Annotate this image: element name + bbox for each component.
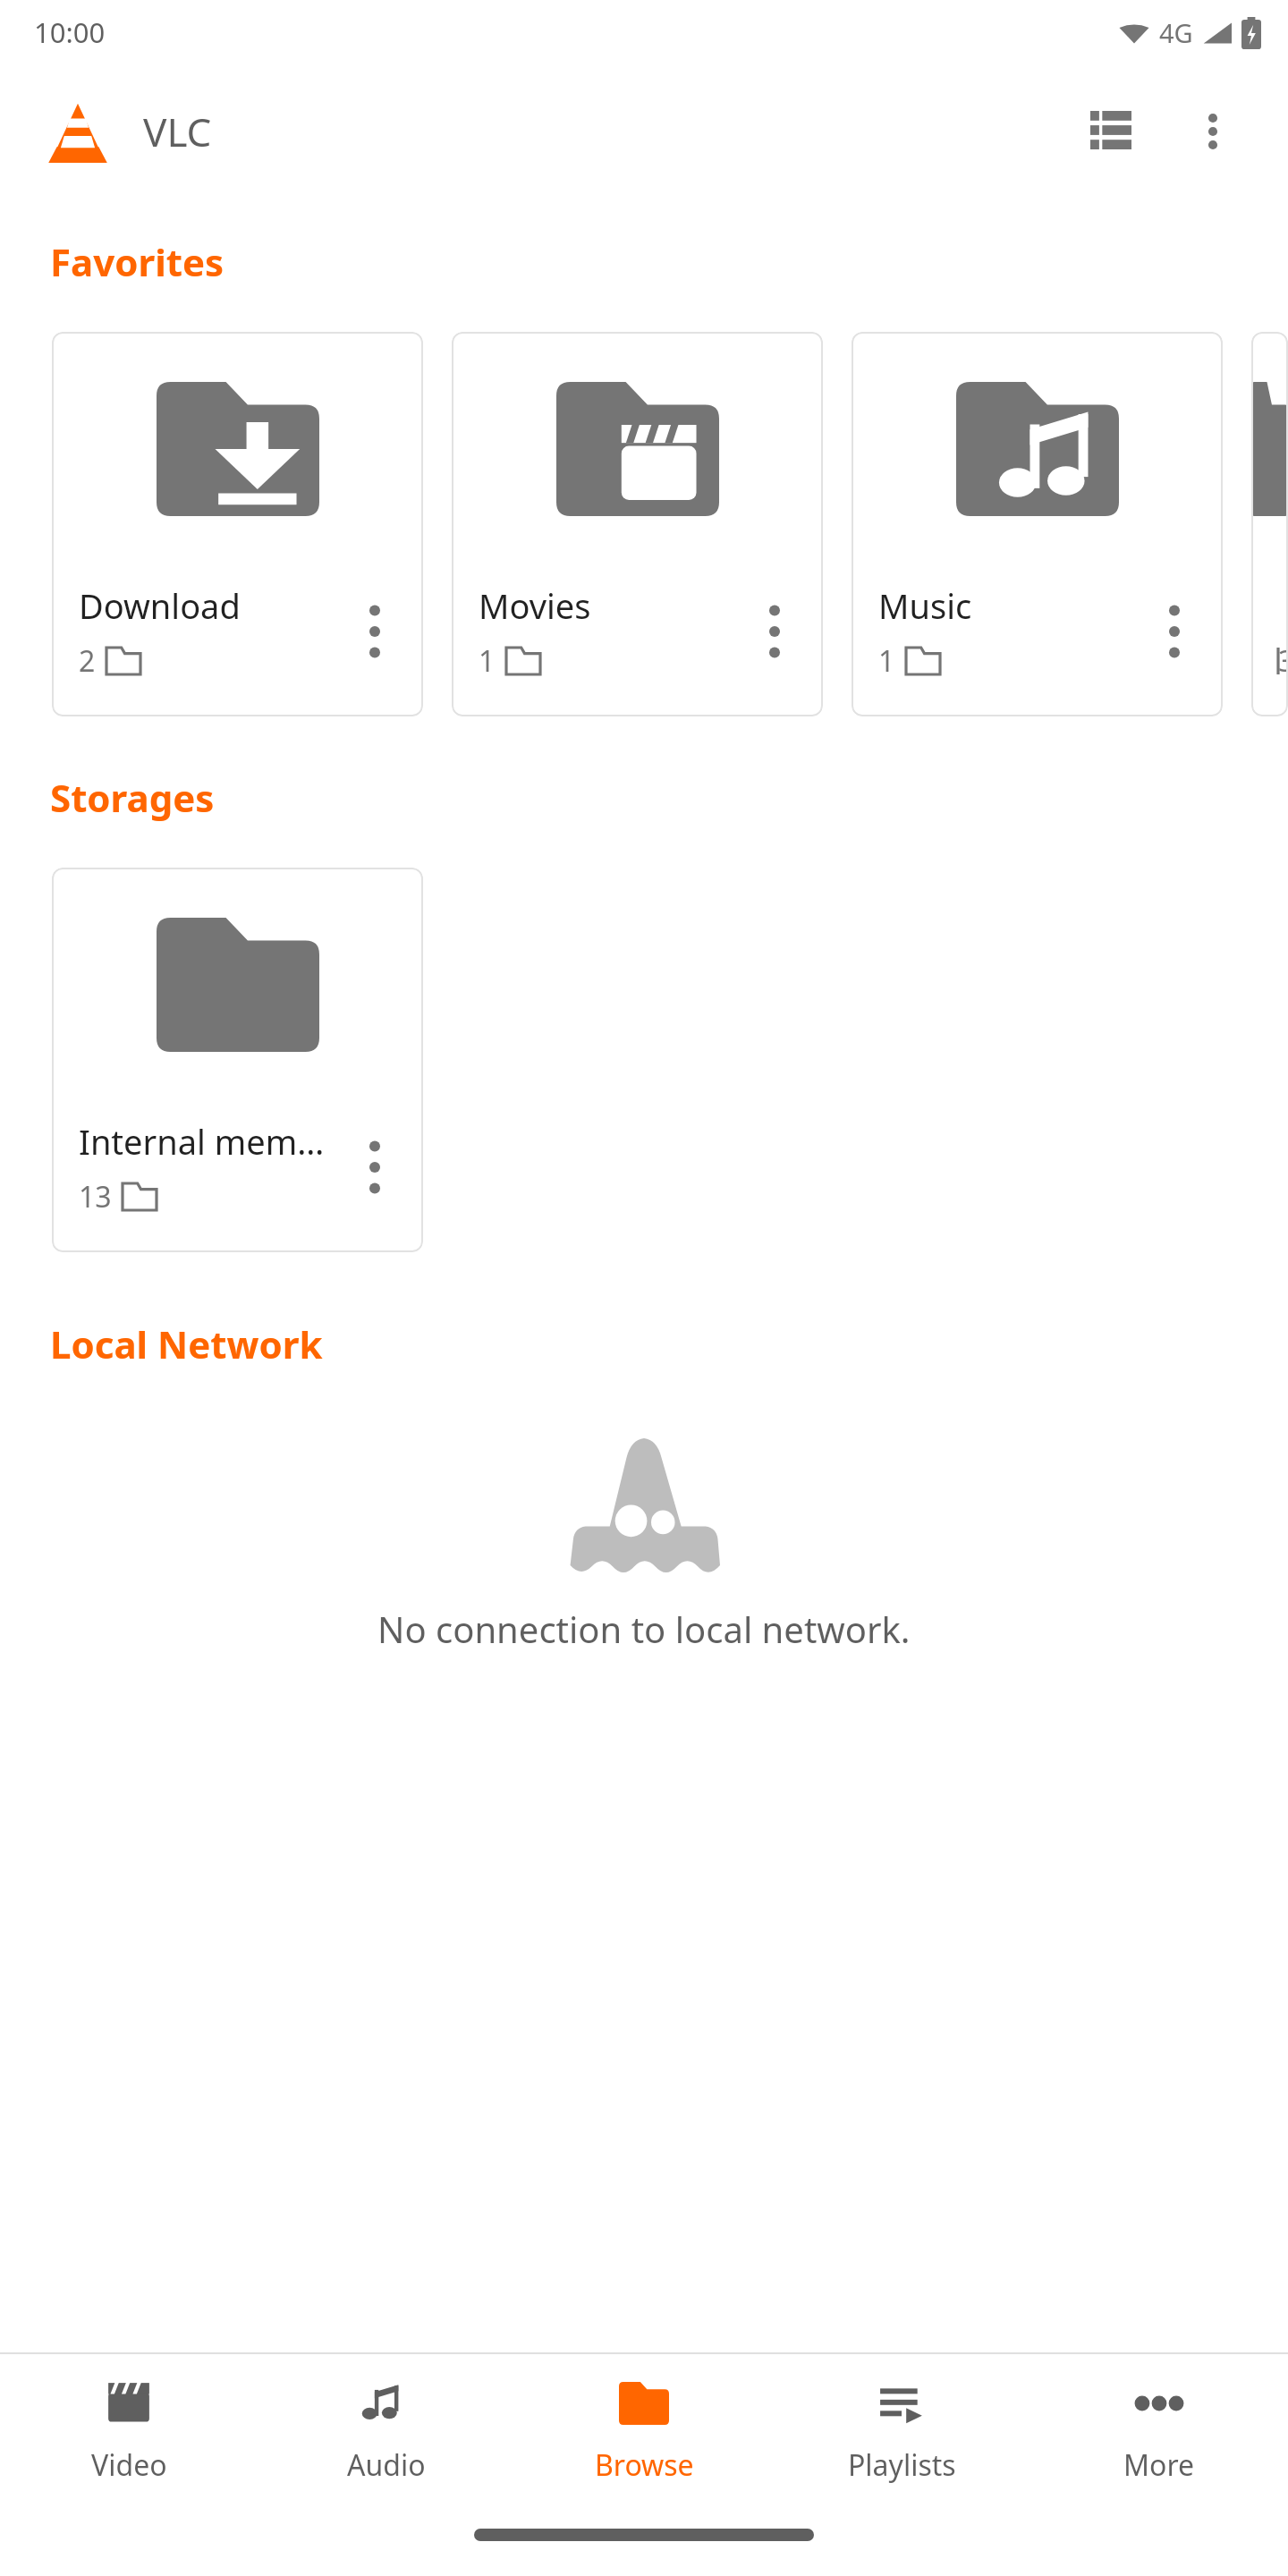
staticText: Local Network: [50, 1318, 323, 1369]
button[interactable]: More options for Download: [339, 596, 411, 667]
staticText: Video: [91, 2445, 167, 2485]
staticText: More: [1123, 2445, 1195, 2485]
button[interactable]: More: [1030, 2354, 1288, 2508]
staticText: 10:00: [34, 13, 106, 51]
staticText: Storages: [50, 772, 215, 823]
staticText: Audio: [347, 2445, 426, 2485]
button[interactable]: Internal memory: [52, 868, 423, 1252]
staticText: Favorites: [50, 236, 225, 287]
button[interactable]: Playlists: [773, 2354, 1030, 2508]
staticText: 13: [79, 1177, 112, 1216]
button[interactable]: Movies: [452, 332, 823, 716]
staticText: 2: [79, 641, 96, 681]
staticText: Browse: [595, 2445, 694, 2485]
staticText: Music: [878, 582, 972, 629]
staticText: VLC: [143, 105, 212, 158]
button[interactable]: Music: [852, 332, 1223, 716]
staticText: Internal memory: [79, 1118, 339, 1165]
staticText: 1: [878, 641, 895, 681]
button[interactable]: Browse: [515, 2354, 773, 2508]
staticText: No connection to local network.: [377, 1605, 911, 1653]
button[interactable]: More options for Music: [1139, 596, 1210, 667]
staticText: Download: [79, 582, 241, 629]
button[interactable]: More options: [1170, 89, 1256, 174]
staticText: Movies: [479, 582, 591, 629]
button[interactable]: More options for Internal memory: [339, 1131, 411, 1203]
button[interactable]: More options for Movies: [739, 596, 810, 667]
button[interactable]: Download: [52, 332, 423, 716]
button[interactable]: Video: [0, 2354, 258, 2508]
button[interactable]: Display mode: [1068, 89, 1154, 174]
staticText: 1: [479, 641, 496, 681]
button[interactable]: Audio: [258, 2354, 515, 2508]
staticText: 4G: [1159, 15, 1193, 50]
staticText: Playlists: [848, 2445, 956, 2485]
button[interactable]: Podcasts: [1251, 332, 1288, 716]
